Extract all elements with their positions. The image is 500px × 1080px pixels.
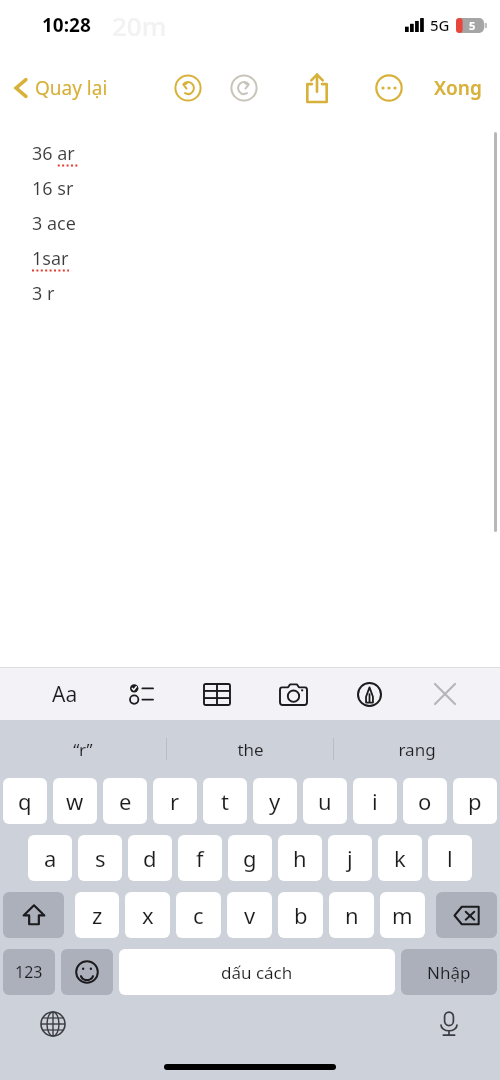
- staticText: Aa: [52, 680, 78, 709]
- button[interactable]: Dictate: [428, 1003, 470, 1045]
- button[interactable]: 123: [3, 949, 55, 995]
- button[interactable]: l: [428, 835, 472, 881]
- staticText: q: [18, 786, 32, 816]
- button[interactable]: d: [128, 835, 172, 881]
- button[interactable]: c: [176, 892, 221, 938]
- staticText: n: [345, 900, 359, 930]
- button[interactable]: Table: [196, 673, 238, 715]
- button[interactable]: Shift: [3, 892, 64, 938]
- staticText: 1sar: [32, 246, 69, 271]
- button[interactable]: Change keyboard: [32, 1003, 74, 1045]
- button[interactable]: r: [153, 778, 197, 824]
- staticText: w: [66, 786, 84, 816]
- button[interactable]: Xong: [428, 67, 488, 109]
- staticText: v: [244, 900, 256, 930]
- staticText: 20m: [112, 8, 167, 43]
- staticText: e: [119, 786, 132, 816]
- button[interactable]: n: [329, 892, 374, 938]
- button[interactable]: Redo: [224, 68, 264, 108]
- button[interactable]: the: [167, 720, 333, 778]
- staticText: k: [394, 843, 406, 873]
- staticText: o: [418, 786, 432, 816]
- staticText: x: [142, 900, 154, 930]
- button[interactable]: u: [303, 778, 347, 824]
- button[interactable]: Share: [295, 66, 339, 110]
- staticText: s: [95, 843, 106, 873]
- button[interactable]: Quay lại: [10, 69, 112, 107]
- button[interactable]: Undo: [168, 68, 208, 108]
- staticText: 16 sr: [32, 176, 74, 201]
- button[interactable]: o: [403, 778, 447, 824]
- staticText: Nhập: [427, 961, 471, 984]
- staticText: Quay lại: [35, 75, 108, 101]
- button[interactable]: t: [203, 778, 247, 824]
- staticText: t: [221, 786, 229, 816]
- button[interactable]: f: [178, 835, 222, 881]
- button[interactable]: Close: [424, 673, 466, 715]
- button[interactable]: a: [28, 835, 72, 881]
- staticText: 5G: [430, 15, 450, 35]
- staticText: j: [347, 843, 353, 873]
- button[interactable]: w: [53, 778, 97, 824]
- staticText: y: [269, 786, 281, 816]
- staticText: m: [392, 900, 413, 930]
- staticText: z: [92, 900, 103, 930]
- button[interactable]: “r”: [0, 720, 166, 778]
- button[interactable]: Camera: [272, 673, 314, 715]
- staticText: g: [243, 843, 257, 873]
- button[interactable]: v: [227, 892, 272, 938]
- button[interactable]: k: [378, 835, 422, 881]
- button[interactable]: b: [278, 892, 323, 938]
- button[interactable]: Nhập: [401, 949, 497, 995]
- button[interactable]: e: [103, 778, 147, 824]
- staticText: f: [196, 843, 204, 873]
- staticText: the: [237, 738, 264, 761]
- button[interactable]: i: [353, 778, 397, 824]
- staticText: 3 r: [32, 281, 55, 306]
- staticText: i: [372, 786, 378, 816]
- button[interactable]: s: [78, 835, 122, 881]
- button[interactable]: h: [278, 835, 322, 881]
- button[interactable]: Text format: [44, 673, 86, 715]
- button[interactable]: z: [75, 892, 119, 938]
- staticText: d: [143, 843, 157, 873]
- button[interactable]: Checklist: [120, 673, 162, 715]
- button[interactable]: p: [453, 778, 497, 824]
- button[interactable]: g: [228, 835, 272, 881]
- button[interactable]: y: [253, 778, 297, 824]
- button[interactable]: Backspace: [436, 892, 497, 938]
- staticText: p: [468, 786, 482, 816]
- staticText: rang: [398, 738, 436, 761]
- staticText: 3 ace: [32, 211, 76, 236]
- staticText: r: [170, 786, 180, 816]
- button[interactable]: More options: [368, 67, 410, 109]
- staticText: l: [447, 843, 453, 873]
- button[interactable]: rang: [334, 720, 500, 778]
- staticText: “r”: [73, 738, 93, 761]
- button[interactable]: x: [125, 892, 170, 938]
- staticText: u: [318, 786, 332, 816]
- staticText: 36 ar: [32, 141, 75, 166]
- button[interactable]: m: [380, 892, 425, 938]
- staticText: 5: [469, 18, 476, 33]
- staticText: c: [193, 900, 204, 930]
- button[interactable]: q: [3, 778, 47, 824]
- staticText: Xong: [434, 75, 482, 101]
- button[interactable]: Markup: [348, 673, 390, 715]
- button[interactable]: j: [328, 835, 372, 881]
- staticText: h: [293, 843, 307, 873]
- staticText: b: [294, 900, 308, 930]
- button[interactable]: Emoji: [61, 949, 113, 995]
- button[interactable]: dấu cách: [119, 949, 395, 995]
- staticText: dấu cách: [221, 961, 293, 984]
- staticText: 123: [15, 961, 43, 983]
- staticText: 10:28: [42, 12, 91, 38]
- staticText: a: [44, 843, 57, 873]
